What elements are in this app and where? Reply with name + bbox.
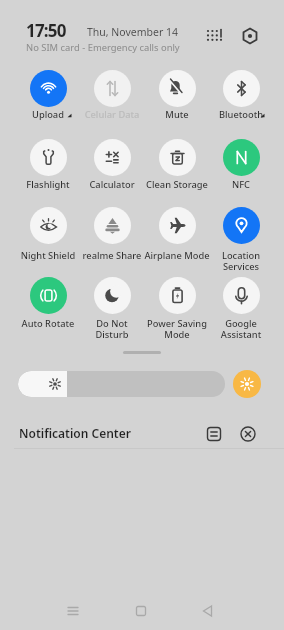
button[interactable] <box>233 370 261 398</box>
button[interactable]: Calculator <box>78 139 146 191</box>
staticText: No SIM card - Emergency calls only <box>26 41 180 54</box>
staticText: Calculator <box>78 178 146 191</box>
button[interactable]: Night Shield <box>14 207 82 262</box>
button[interactable] <box>239 425 257 443</box>
button[interactable]: Flashlight <box>14 139 82 191</box>
staticText: Celular Data <box>78 108 146 121</box>
button[interactable] <box>126 596 156 626</box>
button[interactable]: NFC <box>207 139 275 191</box>
staticText: Night Shield <box>14 249 82 262</box>
staticText: Power Saving Mode <box>143 317 211 341</box>
button[interactable] <box>238 24 262 48</box>
staticText: NFC <box>207 178 275 191</box>
staticText: Mute <box>143 108 211 121</box>
button[interactable]: realme Share <box>78 207 146 262</box>
button[interactable]: Clean Storage <box>143 139 211 191</box>
button[interactable]: Upload <box>14 70 82 121</box>
button[interactable]: Airplane Mode <box>143 207 211 262</box>
staticText: Thu, November 14 <box>87 25 179 39</box>
button[interactable]: Mute <box>143 70 211 121</box>
button[interactable]: Google Assistant <box>207 277 275 341</box>
staticText: Do Not Disturb <box>78 317 146 341</box>
staticText: Auto Rotate <box>14 317 82 330</box>
staticText: Flashlight <box>14 178 82 191</box>
staticText: Airplane Mode <box>143 249 211 262</box>
staticText: Bluetooth <box>207 108 275 121</box>
staticText: Location Services <box>207 249 275 273</box>
button[interactable] <box>58 596 88 626</box>
staticText: Upload <box>14 108 82 121</box>
staticText: Google Assistant <box>207 317 275 341</box>
button[interactable]: Celular Data <box>78 70 146 121</box>
button[interactable]: Do Not Disturb <box>78 277 146 341</box>
staticText: 17:50 <box>26 19 66 42</box>
staticText: Clean Storage <box>143 178 211 191</box>
button[interactable] <box>205 425 223 443</box>
button[interactable]: Location Services <box>207 207 275 273</box>
button[interactable] <box>203 24 227 48</box>
button[interactable] <box>18 371 225 397</box>
button[interactable]: Power Saving Mode <box>143 277 211 341</box>
button[interactable]: Auto Rotate <box>14 277 82 330</box>
button[interactable]: Bluetooth <box>207 70 275 121</box>
staticText: realme Share <box>78 249 146 262</box>
staticText: Notification Center <box>19 425 131 441</box>
button[interactable] <box>193 596 223 626</box>
